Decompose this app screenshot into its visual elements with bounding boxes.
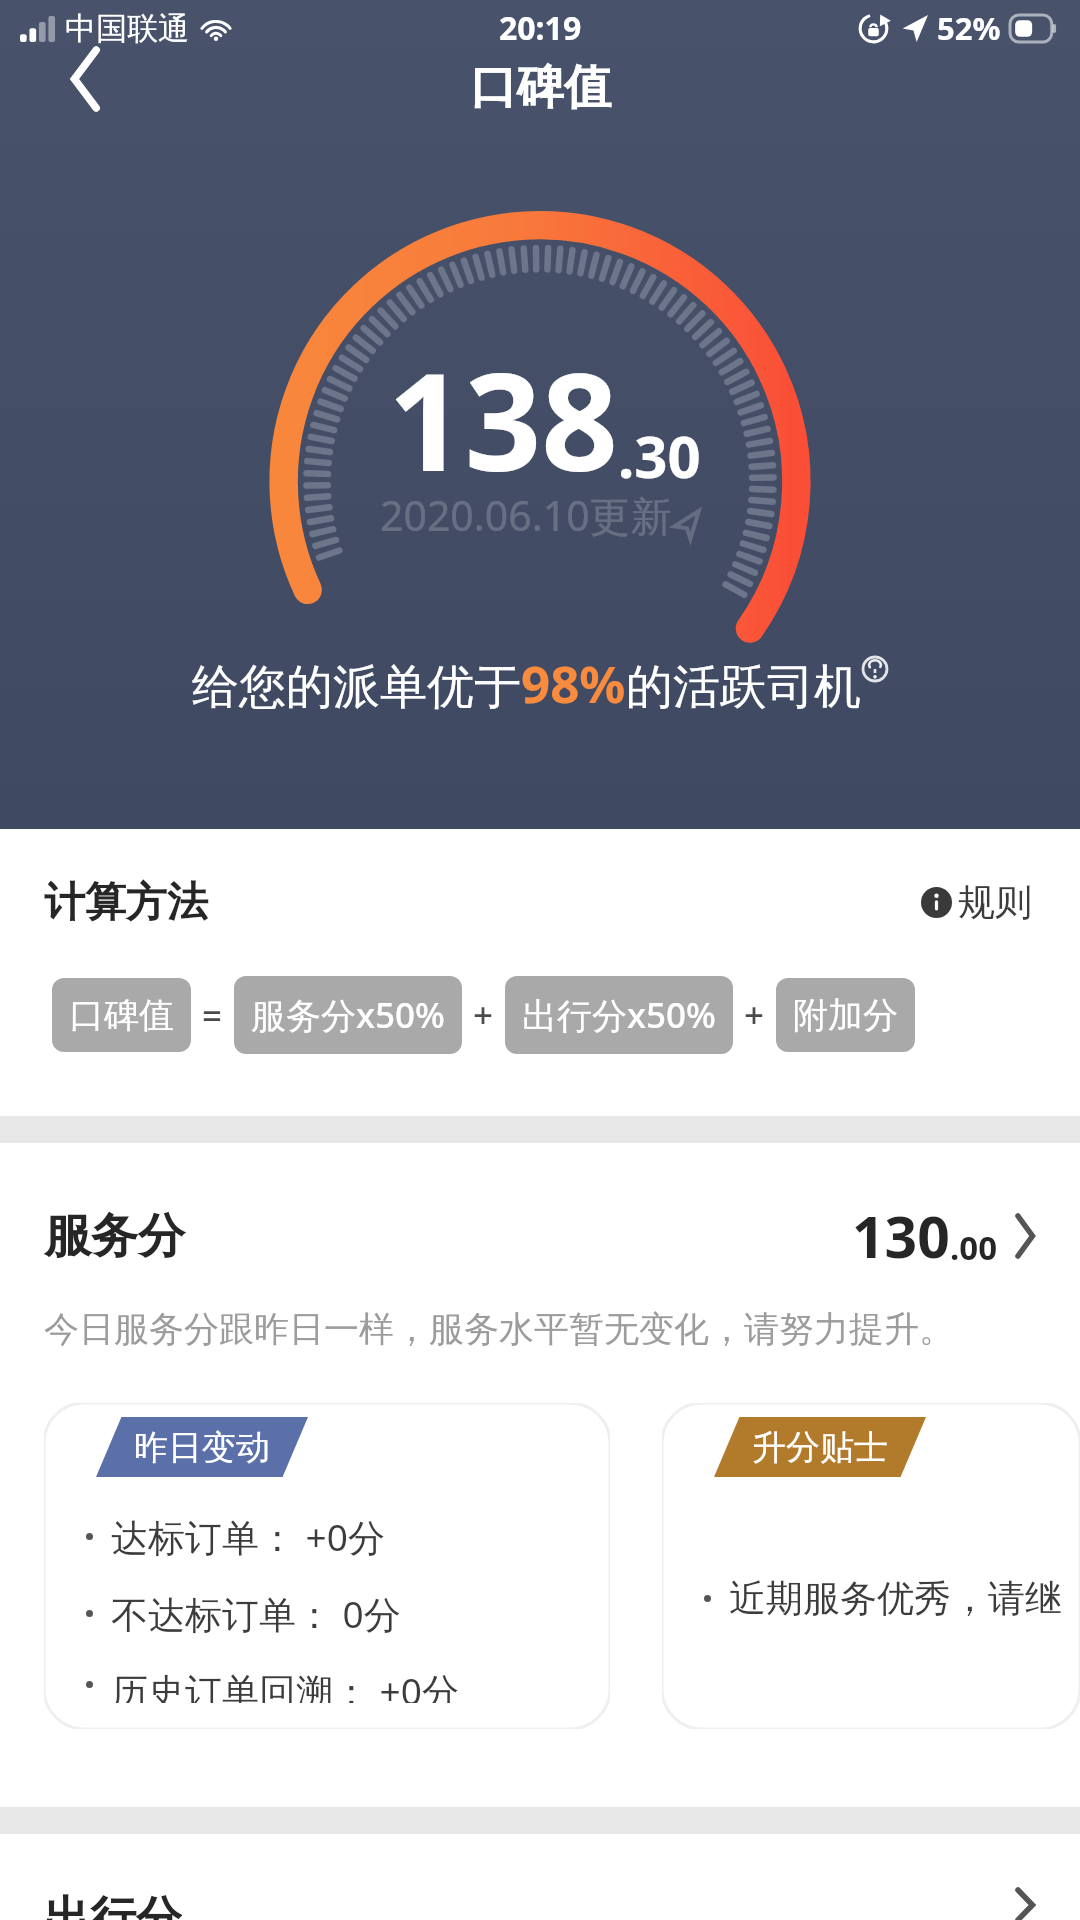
staticText: 规则 — [958, 879, 1032, 926]
staticText: 升分贴士 — [752, 1426, 888, 1469]
staticText: 98% — [521, 648, 626, 717]
button[interactable]: 昨日变动 — [44, 1403, 610, 1729]
button[interactable]: Back — [38, 31, 134, 127]
staticText: 给您的派单优于 — [192, 658, 521, 717]
staticText: 服务分x50% — [251, 991, 445, 1039]
button[interactable]: 升分贴士 — [662, 1403, 1080, 1729]
staticText: 52% — [937, 7, 1001, 49]
staticText: 昨日变动 — [134, 1426, 270, 1469]
button[interactable]: 服务分x50% — [234, 976, 462, 1054]
staticText: .30 — [618, 416, 701, 495]
staticText: 附加分 — [793, 993, 898, 1037]
button[interactable]: 出行分x50% — [505, 976, 733, 1054]
staticText: 近期服务优秀，请继续保持 — [729, 1575, 1080, 1622]
staticText: + — [473, 991, 494, 1039]
staticText: 历史订单回溯： +0分 — [111, 1665, 459, 1703]
staticText: 138 — [388, 328, 618, 511]
staticText: = — [202, 991, 223, 1039]
button[interactable]: 规则 — [917, 875, 1036, 930]
staticText: .00 — [950, 1225, 998, 1270]
staticText: 出行分x50% — [522, 991, 716, 1039]
staticText: 计算方法 — [44, 877, 208, 929]
staticText: + — [744, 991, 765, 1039]
button[interactable]: 附加分 — [776, 978, 915, 1052]
staticText: 2020.06.10更新 — [380, 487, 672, 543]
button[interactable]: 口碑值 — [52, 978, 191, 1052]
staticText: 20:19 — [499, 6, 582, 50]
button[interactable]: 出行分 — [44, 1890, 1036, 1920]
staticText: 口碑值 — [470, 58, 611, 117]
staticText: 不达标订单： 0分 — [111, 1588, 401, 1639]
staticText: 的活跃司机 — [626, 658, 861, 717]
staticText: 达标订单： +0分 — [111, 1511, 385, 1562]
staticText: 130 — [852, 1197, 950, 1275]
button[interactable]: 说明 — [861, 655, 889, 683]
button[interactable]: 服务分 — [44, 1197, 1036, 1275]
staticText: 今日服务分跟昨日一样，服务水平暂无变化，请努力提升。 — [44, 1307, 954, 1351]
staticText: 中国联通 — [65, 9, 189, 48]
staticText: 出行分 — [44, 1890, 182, 1920]
staticText: 口碑值 — [69, 993, 174, 1037]
staticText: 服务分 — [44, 1207, 185, 1266]
